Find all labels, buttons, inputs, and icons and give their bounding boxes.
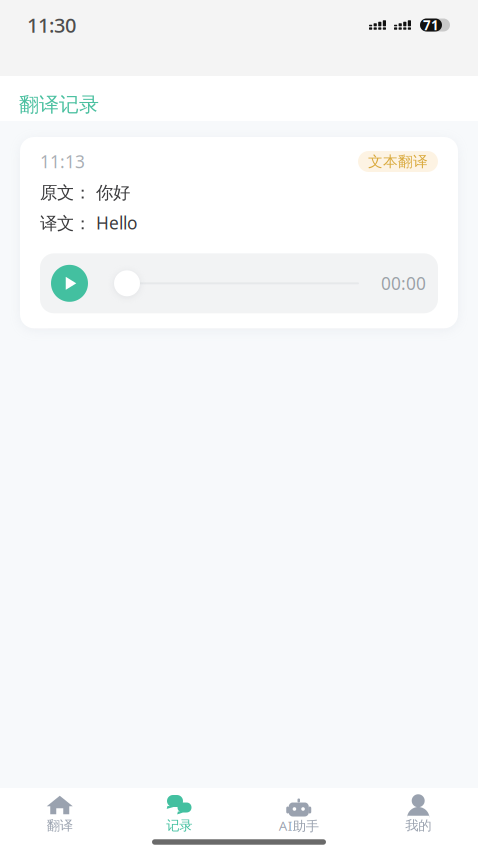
staticText: 记录 [166, 817, 192, 834]
staticText: 11:13 [40, 150, 85, 173]
button[interactable]: 翻译 [0, 794, 119, 832]
staticText: AI助手 [279, 817, 319, 834]
button[interactable]: 我的 [358, 794, 478, 832]
button[interactable]: AI助手 [239, 794, 358, 832]
staticText: 文本翻译 [368, 152, 428, 170]
staticText: 译文： Hello [40, 211, 137, 234]
button[interactable]: Play [51, 265, 88, 302]
staticText: 我的 [405, 817, 431, 834]
staticText: 翻译 [47, 817, 73, 834]
staticText: 00:00 [381, 272, 426, 295]
button[interactable]: 记录 [119, 794, 239, 832]
button[interactable]: Playback position [114, 270, 359, 296]
staticText: 11:30 [27, 12, 76, 38]
staticText: 原文： 你好 [40, 182, 130, 203]
staticText: 翻译记录 [19, 92, 99, 117]
staticText: 71 [423, 16, 439, 34]
